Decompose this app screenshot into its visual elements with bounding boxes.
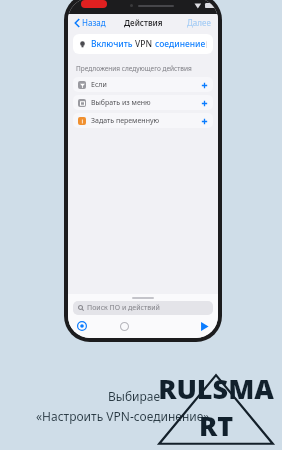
button[interactable]: Add Если <box>200 81 208 89</box>
button[interactable]: Add Выбрать из меню <box>200 99 208 107</box>
button[interactable]: Поиск ПО и действий <box>73 301 213 315</box>
staticText: Действия <box>124 17 163 28</box>
staticText: Далее <box>187 17 211 28</box>
staticText: Поиск ПО и действий <box>87 303 160 313</box>
button[interactable]: Add Задать переменную <box>200 117 208 125</box>
staticText: Включить <box>91 38 135 50</box>
button[interactable]: Задать переменную <box>73 113 213 128</box>
button[interactable]: Shortcuts <box>76 320 88 332</box>
staticText: Выбирае <box>108 388 161 404</box>
button[interactable]: Variables <box>118 320 130 332</box>
staticText: соединение <box>155 38 206 50</box>
button[interactable]: Run <box>198 320 210 332</box>
staticText: Предложения следующего действия <box>76 64 192 73</box>
button[interactable]: Если <box>73 77 213 92</box>
staticText: Выбрать из меню <box>91 98 151 108</box>
button[interactable]: Включить <box>73 34 213 54</box>
button[interactable]: Выбрать из меню <box>73 95 213 110</box>
staticText: Назад <box>82 17 106 28</box>
button[interactable]: Далее <box>185 15 213 30</box>
staticText: «Настроить VPN-соединение» <box>36 408 210 424</box>
staticText: Задать переменную <box>91 116 160 126</box>
staticText: Если <box>91 80 107 90</box>
staticText: RULSMART <box>150 370 282 444</box>
staticText: VPN <box>135 38 155 50</box>
button[interactable]: Назад <box>73 15 108 30</box>
